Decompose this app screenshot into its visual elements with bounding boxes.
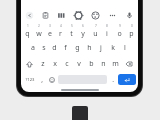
staticText: . — [112, 75, 114, 84]
button[interactable]: Enter — [118, 74, 136, 85]
button[interactable]: g — [71, 40, 83, 56]
staticText: v — [77, 59, 81, 69]
staticText: z — [41, 59, 45, 69]
button[interactable]: Back — [24, 10, 35, 21]
staticText: m — [112, 59, 119, 69]
button[interactable]: a — [27, 40, 38, 56]
staticText: u — [93, 29, 98, 39]
staticText: n — [101, 59, 106, 69]
button[interactable]: Backspace — [121, 56, 137, 72]
staticText: , — [41, 75, 43, 84]
button[interactable]: 4 — [55, 23, 66, 40]
staticText: b — [89, 59, 94, 69]
button[interactable]: f — [60, 40, 71, 56]
staticText: 6 — [82, 24, 84, 28]
button[interactable]: Clipboard — [40, 10, 51, 21]
staticText: 9 — [119, 24, 121, 28]
button[interactable]: . — [108, 73, 118, 86]
button[interactable]: v — [73, 56, 85, 72]
button[interactable]: d — [49, 40, 60, 56]
staticText: j — [100, 43, 102, 53]
button[interactable]: 6 — [77, 23, 89, 40]
button[interactable]: l — [119, 40, 131, 56]
button[interactable]: k — [107, 40, 119, 56]
button[interactable]: , — [37, 73, 47, 86]
button[interactable]: 3 — [44, 23, 55, 40]
button[interactable]: 9 — [113, 23, 125, 40]
button[interactable]: n — [97, 56, 109, 72]
staticText: f — [64, 43, 67, 53]
button[interactable]: j — [95, 40, 107, 56]
staticText: a — [31, 43, 35, 53]
button[interactable]: Emoji — [47, 73, 57, 86]
button[interactable]: b — [85, 56, 97, 72]
button[interactable]: 2 — [33, 23, 44, 40]
staticText: p — [129, 29, 134, 39]
button[interactable]: s — [38, 40, 49, 56]
staticText: g — [75, 43, 80, 53]
button[interactable]: h — [83, 40, 95, 56]
button[interactable]: c — [61, 56, 73, 72]
button[interactable]: m — [109, 56, 121, 72]
staticText: q — [25, 29, 30, 39]
staticText: y — [81, 29, 85, 39]
staticText: 3 — [49, 24, 51, 28]
button[interactable]: 7 — [89, 23, 101, 40]
button[interactable]: Voice input — [124, 10, 135, 21]
staticText: i — [106, 29, 108, 39]
button[interactable]: z — [37, 56, 49, 72]
button[interactable]: Settings — [73, 10, 84, 21]
staticText: 7 — [95, 24, 97, 28]
staticText: 2 — [38, 24, 40, 28]
button[interactable]: 8 — [101, 23, 113, 40]
staticText: 0 — [131, 24, 133, 28]
staticText: 1 — [27, 24, 29, 28]
staticText: e — [48, 29, 52, 39]
staticText: t — [70, 29, 73, 39]
staticText: k — [111, 43, 115, 53]
button[interactable]: Themes — [90, 10, 101, 21]
button[interactable]: ?123 — [23, 73, 37, 86]
staticText: r — [59, 29, 62, 39]
staticText: o — [117, 29, 122, 39]
button[interactable]: 0 — [125, 23, 137, 40]
staticText: 4 — [60, 24, 62, 28]
staticText: l — [124, 43, 126, 53]
staticText: ?123 — [25, 77, 35, 83]
staticText: x — [53, 59, 57, 69]
staticText: d — [52, 43, 57, 53]
staticText: w — [36, 29, 42, 39]
staticText: h — [87, 43, 92, 53]
button[interactable]: GIF — [56, 10, 67, 21]
button[interactable]: More options — [107, 10, 118, 21]
button[interactable]: Shift — [22, 56, 37, 72]
staticText: 5 — [71, 24, 73, 28]
staticText: 8 — [106, 24, 108, 28]
button[interactable]: x — [49, 56, 61, 72]
staticText: c — [65, 59, 69, 69]
staticText: s — [42, 43, 46, 53]
button[interactable]: 1 — [22, 23, 33, 40]
button[interactable]: 5 — [66, 23, 77, 40]
